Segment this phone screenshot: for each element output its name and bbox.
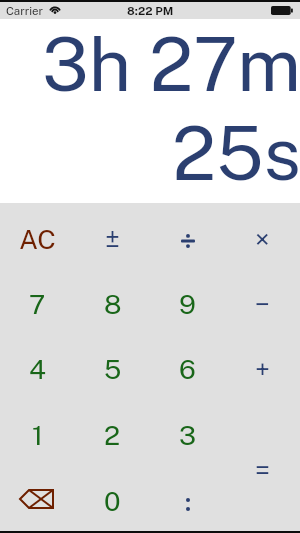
staticText: +: [255, 353, 270, 385]
button[interactable]: 4: [0, 333, 75, 399]
button[interactable]: 9: [150, 268, 225, 333]
button[interactable]: Backspace: [0, 465, 75, 531]
button[interactable]: 7: [0, 268, 75, 333]
other: Divide: [181, 234, 195, 248]
button[interactable]: Divide: [150, 203, 225, 268]
staticText: 1: [32, 419, 43, 451]
staticText: 25s: [172, 110, 300, 197]
staticText: 3: [179, 419, 197, 451]
button[interactable]: 5: [75, 333, 150, 399]
other: Backspace: [19, 489, 54, 509]
staticText: 0: [104, 485, 121, 517]
staticText: 3h 27m: [41, 21, 300, 108]
staticText: 4: [29, 353, 46, 385]
staticText: 9: [179, 288, 196, 320]
button[interactable]: 2: [75, 399, 150, 465]
button[interactable]: 3: [150, 399, 225, 465]
staticText: −: [255, 288, 270, 320]
staticText: =: [255, 453, 270, 485]
button[interactable]: =: [225, 400, 300, 531]
button[interactable]: 1: [0, 399, 75, 465]
button[interactable]: 0: [75, 465, 150, 531]
button[interactable]: 8: [75, 268, 150, 333]
staticText: 6: [179, 353, 196, 385]
button[interactable]: −: [225, 268, 300, 333]
staticText: AC: [19, 223, 56, 255]
staticText: 2: [104, 419, 121, 451]
button[interactable]: +: [225, 333, 300, 399]
other: Colon: [186, 498, 190, 511]
staticText: 5: [104, 353, 122, 385]
button[interactable]: ×: [225, 203, 300, 268]
staticText: 8:22 PM: [127, 4, 174, 18]
staticText: ×: [255, 223, 270, 255]
button[interactable]: Colon: [150, 465, 225, 531]
button[interactable]: AC: [0, 203, 75, 268]
staticText: Carrier: [6, 4, 44, 18]
staticText: 8: [104, 288, 122, 320]
staticText: ±: [105, 223, 120, 255]
button[interactable]: 6: [150, 333, 225, 399]
staticText: 7: [29, 288, 46, 320]
button[interactable]: ±: [75, 203, 150, 268]
